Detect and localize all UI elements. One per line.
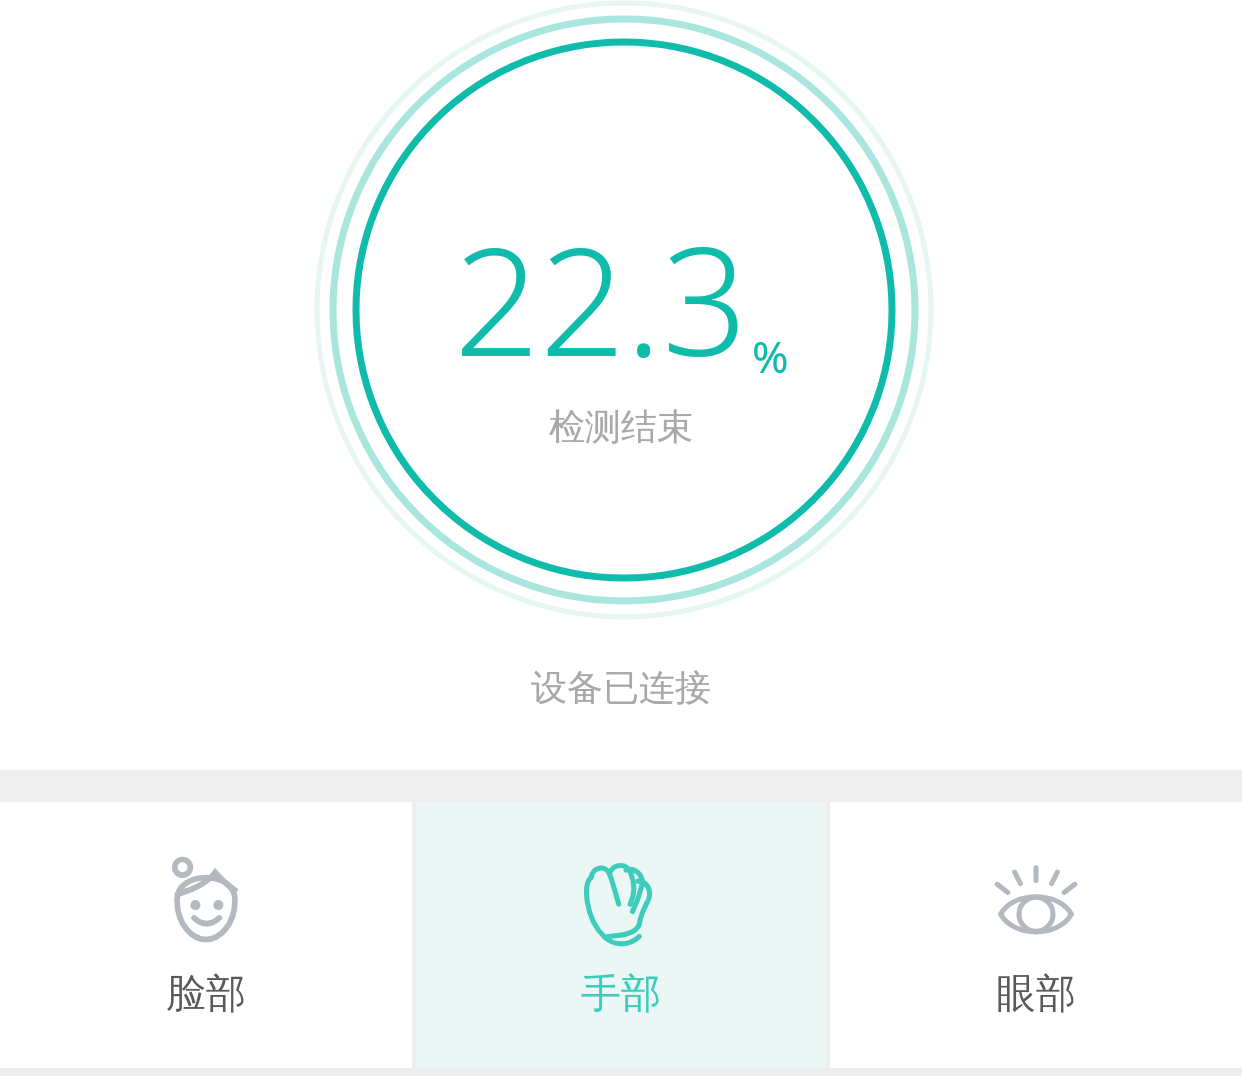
button[interactable]: Eye	[830, 802, 1242, 1068]
button[interactable]: Face	[0, 802, 412, 1068]
staticText: 手部	[581, 968, 661, 1018]
button[interactable]: Hand	[416, 802, 826, 1068]
staticText: 检测结束	[549, 404, 693, 449]
staticText: %	[752, 326, 789, 386]
staticText: 22.3	[454, 196, 748, 400]
staticText: 设备已连接	[531, 665, 711, 710]
staticText: 脸部	[166, 968, 246, 1018]
staticText: 眼部	[996, 968, 1076, 1018]
